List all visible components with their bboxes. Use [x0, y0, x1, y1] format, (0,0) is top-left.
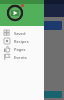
- button[interactable]: [2, 91, 62, 98]
- staticText: Recipes: [14, 39, 29, 44]
- button[interactable]: Profile avatar: [0, 0, 44, 26]
- button[interactable]: Events: [0, 53, 44, 61]
- staticText: Events: [14, 55, 27, 60]
- button[interactable]: Recipes: [0, 37, 44, 45]
- button[interactable]: Pages: [0, 45, 44, 53]
- staticText: Pages: [14, 47, 26, 52]
- button[interactable]: [2, 21, 62, 30]
- button[interactable]: Saved: [0, 29, 44, 37]
- staticText: Saved: [14, 31, 26, 36]
- button[interactable]: Profile avatar: [7, 5, 23, 21]
